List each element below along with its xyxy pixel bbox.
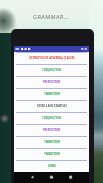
button[interactable]: PREPOSITION	[14, 76, 89, 88]
button[interactable]: DETAILS AND EXAMPLES	[14, 100, 89, 112]
staticText: CONJUNCTION	[42, 116, 61, 119]
staticText: HOME	[48, 164, 56, 167]
staticText: TRANSITION	[44, 152, 60, 155]
staticText: DETAILS AND EXAMPLES	[37, 104, 67, 107]
staticText: CONJUNCTION	[42, 68, 61, 71]
staticText: TRANSITION	[44, 140, 60, 143]
staticText: GRAMMAR...	[33, 13, 70, 21]
button[interactable]: TRANSITION	[14, 148, 89, 160]
button[interactable]: CONJUNCTION	[14, 64, 89, 76]
staticText: PREPOSITION	[43, 80, 60, 83]
staticText: DEFINITION OF ADVERBIAL CLAUSES	[29, 56, 75, 59]
button[interactable]: TRANSITION	[14, 136, 89, 148]
staticText: TRANSITION	[44, 92, 60, 95]
button[interactable]: CONJUNCTION	[14, 112, 89, 124]
button[interactable]: HOME	[14, 160, 89, 172]
button[interactable]: TRANSITION	[14, 88, 89, 100]
button[interactable]: DEFINITION OF ADVERBIAL CLAUSES	[14, 52, 89, 64]
button[interactable]: PREPOSITION	[14, 124, 89, 136]
staticText: PREPOSITION	[43, 128, 60, 131]
